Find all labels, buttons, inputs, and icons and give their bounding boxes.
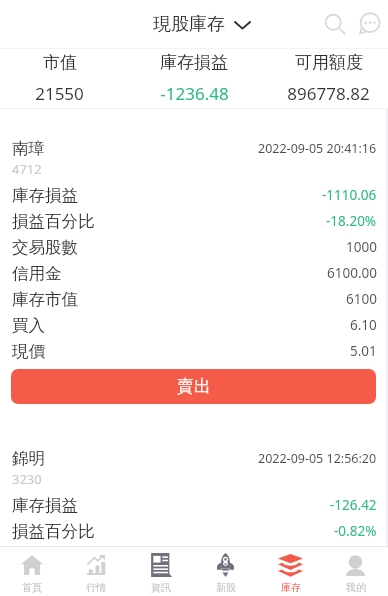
- button[interactable]: 資訊: [128, 547, 193, 596]
- staticText: -0.82%: [334, 522, 377, 540]
- button[interactable]: 賣出: [11, 369, 376, 404]
- button[interactable]: Search: [318, 7, 352, 41]
- staticText: 21550: [35, 82, 84, 105]
- staticText: 損益百分比: [12, 211, 95, 232]
- staticText: 2022-09-05 12:56:20: [258, 450, 377, 467]
- staticText: 庫存損益: [12, 495, 78, 516]
- staticText: 我的: [346, 581, 366, 594]
- staticText: 錦明: [12, 448, 45, 469]
- staticText: 4712: [12, 160, 42, 178]
- staticText: 行情: [86, 581, 106, 594]
- staticText: 現價: [12, 341, 45, 362]
- staticText: 首頁: [22, 581, 42, 594]
- staticText: 庫存市值: [12, 289, 78, 310]
- staticText: 新股: [216, 581, 236, 594]
- staticText: -126.42: [330, 496, 377, 514]
- staticText: 賣出: [177, 376, 211, 397]
- staticText: 可用額度: [295, 52, 363, 73]
- staticText: 6.10: [350, 316, 377, 334]
- button[interactable]: 首頁: [0, 547, 64, 596]
- staticText: 損益百分比: [12, 521, 95, 542]
- button[interactable]: 庫存: [258, 547, 323, 596]
- button[interactable]: Messages: [352, 7, 386, 41]
- staticText: -1236.48: [160, 82, 229, 105]
- staticText: 1000: [346, 238, 377, 256]
- staticText: 2022-09-05 20:41:16: [258, 140, 377, 157]
- staticText: 6100: [346, 290, 377, 308]
- staticText: 買入: [12, 315, 45, 336]
- staticText: 5.01: [350, 342, 377, 360]
- staticText: 896778.82: [287, 82, 370, 105]
- button[interactable]: 我的: [323, 547, 388, 596]
- staticText: 交易股數: [12, 237, 78, 258]
- staticText: 市值: [43, 52, 77, 73]
- staticText: -18.20%: [326, 212, 377, 230]
- staticText: 南璋: [12, 138, 45, 159]
- button[interactable]: 新股: [193, 547, 258, 596]
- staticText: 庫存損益: [12, 185, 78, 206]
- staticText: -1110.06: [322, 186, 377, 204]
- staticText: 6100.00: [327, 264, 377, 282]
- staticText: 庫存: [281, 581, 301, 594]
- staticText: 庫存損益: [160, 52, 228, 73]
- button[interactable]: 現股庫存: [153, 13, 251, 36]
- staticText: 現股庫存: [153, 13, 225, 36]
- staticText: 信用金: [12, 263, 62, 284]
- button[interactable]: 行情: [64, 547, 128, 596]
- staticText: 3230: [12, 470, 42, 488]
- staticText: 資訊: [151, 581, 171, 594]
